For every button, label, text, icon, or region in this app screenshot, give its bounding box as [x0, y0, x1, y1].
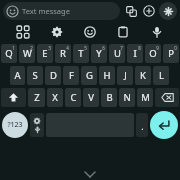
- staticText: J: [124, 69, 127, 82]
- button[interactable]: Backspace: [155, 88, 179, 107]
- button[interactable]: E: [37, 44, 53, 63]
- staticText: 1: [12, 45, 15, 51]
- staticText: A: [14, 69, 21, 82]
- staticText: R: [60, 47, 66, 60]
- staticText: I: [133, 47, 137, 60]
- staticText: Z: [34, 91, 40, 104]
- staticText: U: [114, 47, 121, 60]
- button[interactable]: Add: [141, 3, 157, 19]
- button[interactable]: Enter: [150, 111, 178, 139]
- button[interactable]: Emoji: [80, 22, 100, 42]
- button[interactable]: H: [99, 66, 115, 85]
- staticText: 4: [66, 45, 69, 51]
- button[interactable]: V: [83, 88, 99, 107]
- staticText: 7: [120, 45, 123, 51]
- staticText: 9: [156, 45, 159, 51]
- button[interactable]: B: [101, 88, 117, 107]
- staticText: .: [141, 120, 144, 132]
- button[interactable]: Q: [1, 44, 17, 63]
- staticText: T: [78, 47, 84, 60]
- staticText: H: [103, 69, 111, 82]
- button[interactable]: Settings: [47, 22, 67, 42]
- staticText: S: [32, 69, 38, 82]
- staticText: E: [42, 47, 48, 60]
- button[interactable]: Z: [28, 88, 45, 107]
- button[interactable]: N: [119, 88, 135, 107]
- staticText: 0: [174, 45, 177, 51]
- button[interactable]: M: [137, 88, 153, 107]
- button[interactable]: Voice input: [147, 22, 167, 42]
- staticText: B: [106, 91, 113, 104]
- staticText: M: [141, 91, 150, 104]
- staticText: P: [168, 47, 174, 60]
- staticText: Y: [96, 47, 102, 60]
- button[interactable]: U: [109, 44, 125, 63]
- button[interactable]: Shift: [1, 88, 26, 107]
- staticText: X: [52, 91, 58, 104]
- staticText: 2: [30, 45, 33, 51]
- button[interactable]: L: [153, 66, 169, 85]
- staticText: Text message: [22, 6, 70, 16]
- staticText: G: [86, 69, 93, 82]
- staticText: O: [149, 47, 157, 60]
- staticText: L: [159, 69, 164, 82]
- staticText: ?123: [7, 120, 23, 130]
- button[interactable]: A: [10, 66, 25, 85]
- button[interactable]: T: [73, 44, 89, 63]
- button[interactable]: S: [27, 66, 43, 85]
- button[interactable]: C: [65, 88, 81, 107]
- staticText: 6: [102, 45, 105, 51]
- button[interactable]: W: [19, 44, 35, 63]
- button[interactable]: X: [47, 88, 63, 107]
- button[interactable]: R: [55, 44, 71, 63]
- button[interactable]: Clipboard: [113, 22, 133, 42]
- staticText: C: [70, 91, 77, 104]
- staticText: 5: [84, 45, 87, 51]
- button[interactable]: F: [63, 66, 79, 85]
- button[interactable]: Text message: [3, 2, 120, 20]
- button[interactable]: Y: [91, 44, 107, 63]
- staticText: N: [123, 91, 131, 104]
- button[interactable]: G: [81, 66, 97, 85]
- staticText: D: [50, 69, 57, 82]
- staticText: K: [140, 69, 146, 82]
- button[interactable]: O: [145, 44, 161, 63]
- button[interactable]: D: [45, 66, 61, 85]
- button[interactable]: Copy: [123, 3, 139, 19]
- staticText: 8: [138, 45, 141, 51]
- button[interactable]: Apps: [13, 22, 33, 42]
- staticText: F: [69, 69, 74, 82]
- button[interactable]: J: [117, 66, 133, 85]
- button[interactable]: K: [135, 66, 151, 85]
- button[interactable]: .: [136, 113, 148, 137]
- button[interactable]: Voice: [159, 2, 177, 20]
- button[interactable]: ?123: [2, 112, 28, 138]
- button[interactable]: Language and voice: [30, 113, 44, 137]
- staticText: Q: [5, 47, 13, 60]
- staticText: 3: [48, 45, 51, 51]
- button[interactable]: I: [127, 44, 143, 63]
- button[interactable]: P: [163, 44, 179, 63]
- button[interactable]: Hide keyboard: [82, 170, 98, 178]
- staticText: V: [88, 91, 94, 104]
- staticText: W: [23, 47, 32, 60]
